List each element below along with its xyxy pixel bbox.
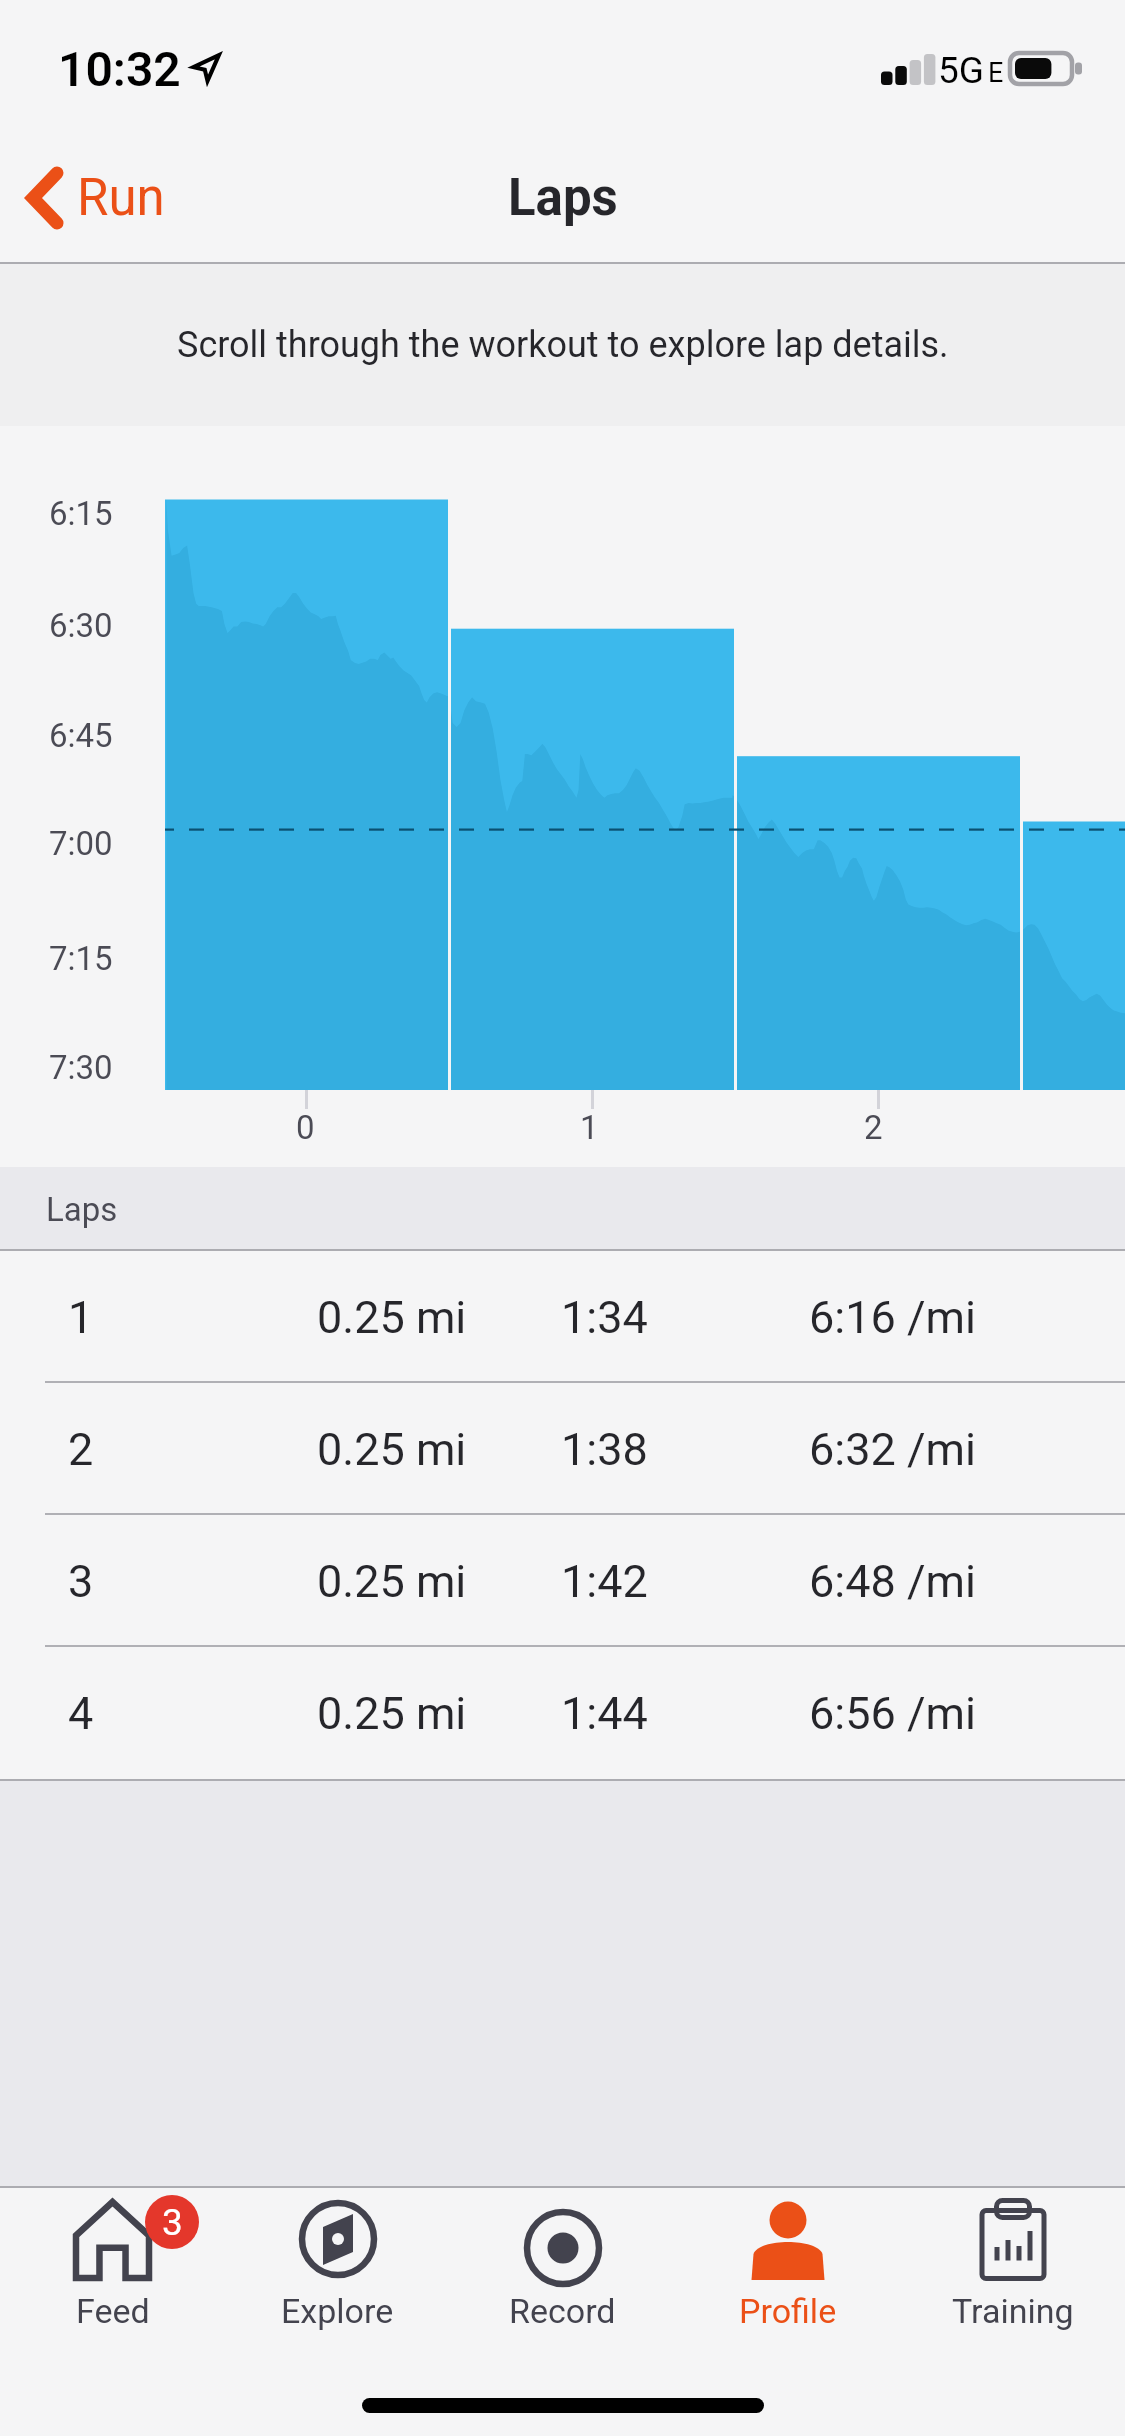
staticText: 0.25 mi	[317, 1423, 467, 1476]
staticText: Laps	[46, 1190, 118, 1229]
staticText: 7:30	[49, 1048, 113, 1087]
button[interactable]: Record	[450, 2188, 675, 2340]
staticText: E	[988, 57, 1004, 89]
staticText: 1	[68, 1291, 94, 1344]
staticText: 6:15	[49, 494, 113, 533]
staticText: 6:30	[49, 606, 113, 645]
staticText: 6:56 /mi	[809, 1687, 976, 1740]
button[interactable]: Training	[900, 2188, 1125, 2340]
staticText: 3	[68, 1555, 94, 1608]
staticText: 10:32	[58, 41, 181, 97]
staticText: Run	[77, 168, 165, 228]
staticText: 2	[864, 1108, 883, 1147]
staticText: 3	[162, 2201, 183, 2244]
staticText: 0.25 mi	[317, 1687, 467, 1740]
staticText: Training	[952, 2291, 1074, 2331]
button[interactable]: 2	[0, 1383, 1125, 1515]
staticText: 6:45	[49, 716, 113, 755]
button[interactable]: 1	[0, 1251, 1125, 1383]
staticText: 6:32 /mi	[809, 1423, 976, 1476]
staticText: Laps	[508, 168, 618, 228]
staticText: Profile	[739, 2291, 837, 2331]
staticText: Feed	[76, 2291, 150, 2331]
staticText: 0.25 mi	[317, 1291, 467, 1344]
staticText: 1	[580, 1108, 599, 1147]
button[interactable]: Explore	[225, 2188, 450, 2340]
staticText: 1:44	[561, 1687, 648, 1740]
staticText: 1:34	[561, 1291, 648, 1344]
staticText: 2	[68, 1423, 94, 1476]
staticText: 1:42	[561, 1555, 648, 1608]
button[interactable]: Profile	[675, 2188, 900, 2340]
button[interactable]: 4	[0, 1647, 1125, 1779]
staticText: 4	[68, 1687, 94, 1740]
staticText: 5G	[938, 49, 984, 92]
staticText: 7:15	[49, 939, 113, 978]
staticText: 6:48 /mi	[809, 1555, 976, 1608]
staticText: 0.25 mi	[317, 1555, 467, 1608]
staticText: 6:16 /mi	[809, 1291, 976, 1344]
staticText: 0	[296, 1108, 315, 1147]
button[interactable]: 3	[0, 2188, 225, 2340]
button[interactable]: Back to Run	[12, 156, 179, 240]
staticText: 1:38	[561, 1423, 648, 1476]
staticText: Scroll through the workout to explore la…	[177, 324, 949, 366]
staticText: 7:00	[49, 824, 113, 863]
staticText: Record	[509, 2291, 616, 2331]
staticText: Explore	[281, 2291, 394, 2331]
button[interactable]: 3	[0, 1515, 1125, 1647]
